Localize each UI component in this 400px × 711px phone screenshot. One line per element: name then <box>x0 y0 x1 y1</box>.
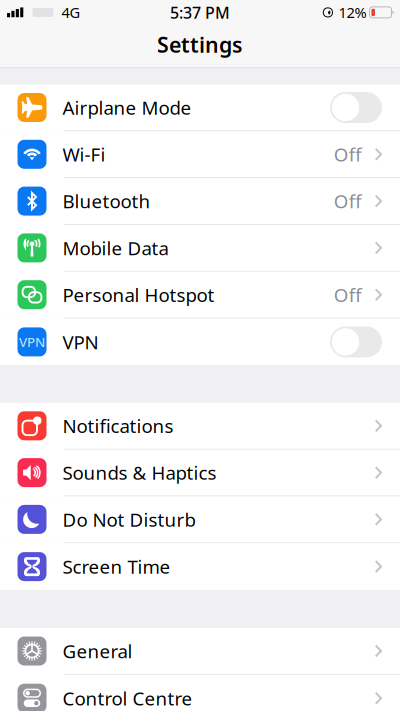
staticText: VPN <box>19 333 45 351</box>
staticText: VPN <box>62 329 98 354</box>
button[interactable]: Do Not Disturb <box>0 496 400 543</box>
staticText: Sounds & Haptics <box>62 460 216 485</box>
staticText: General <box>62 639 132 663</box>
button[interactable]: Wi-Fi <box>0 131 400 178</box>
staticText: Screen Time <box>62 554 170 579</box>
button[interactable]: General <box>0 628 400 675</box>
button[interactable]: VPN <box>0 318 400 365</box>
button[interactable]: Mobile Data <box>0 225 400 272</box>
staticText: 5:37 PM <box>170 2 230 23</box>
button[interactable]: Notifications <box>0 403 400 450</box>
button[interactable]: Sounds & Haptics <box>0 450 400 496</box>
staticText: Wi-Fi <box>62 142 105 167</box>
staticText: Mobile Data <box>62 235 168 260</box>
staticText: Do Not Disturb <box>62 507 195 532</box>
button[interactable]: Screen Time <box>0 543 400 590</box>
staticText: Settings <box>157 30 243 58</box>
staticText: 12% <box>338 3 366 22</box>
staticText: Notifications <box>62 413 173 438</box>
staticText: Personal Hotspot <box>62 282 214 307</box>
button[interactable]: Airplane Mode <box>0 84 400 131</box>
staticText: 4G <box>61 3 80 22</box>
button[interactable]: Bluetooth <box>0 178 400 225</box>
button[interactable]: Control Centre <box>0 675 400 711</box>
staticText: Control Centre <box>62 686 192 711</box>
staticText: Off <box>334 142 362 167</box>
button[interactable]: Personal Hotspot <box>0 272 400 318</box>
staticText: Airplane Mode <box>62 95 191 120</box>
staticText: Bluetooth <box>62 189 150 213</box>
staticText: Off <box>334 282 362 307</box>
staticText: Off <box>334 189 362 213</box>
